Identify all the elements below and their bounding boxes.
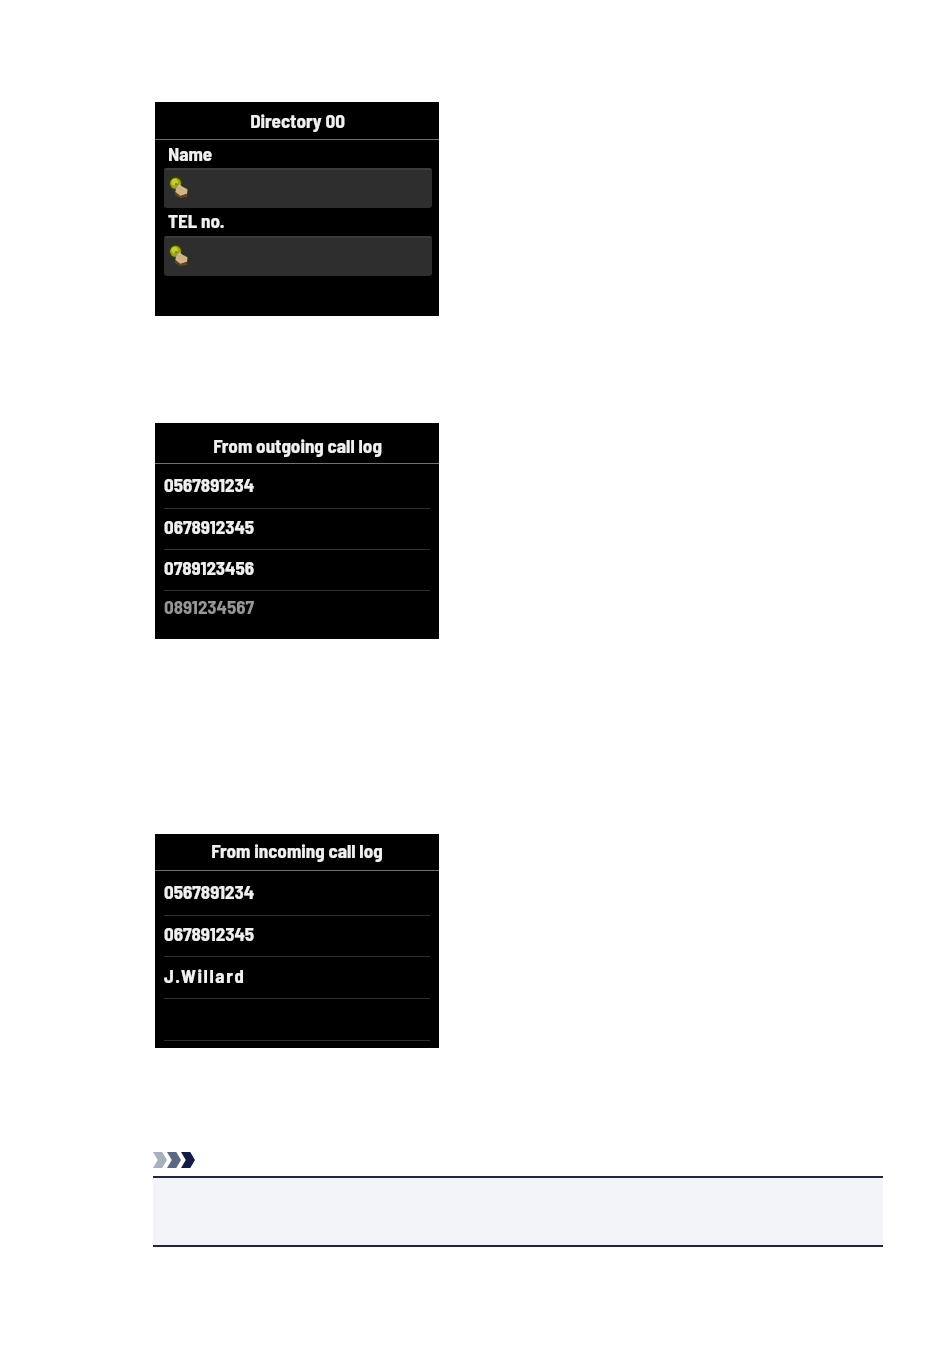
staticText: From incoming call log	[211, 839, 383, 862]
staticText: J.Willard	[164, 964, 246, 987]
staticText: 0678912345	[164, 515, 255, 538]
button[interactable]: 0789123456	[155, 549, 439, 590]
staticText: 0789123456	[164, 556, 255, 579]
staticText: From outgoing call log	[213, 434, 382, 457]
staticText: Name	[168, 142, 213, 165]
staticText: 0891234567	[164, 595, 255, 618]
staticText: 0567891234	[164, 880, 255, 903]
button[interactable]: Enter name	[164, 168, 432, 208]
button[interactable]: Enter telephone number	[164, 236, 432, 276]
other: Note	[153, 1152, 195, 1168]
staticText: Directory 00	[250, 109, 345, 132]
staticText: 0678912345	[164, 922, 255, 945]
button[interactable]: 0567891234	[155, 464, 439, 508]
staticText: 0567891234	[164, 473, 255, 496]
button[interactable]	[155, 998, 439, 1040]
button[interactable]: 0891234567	[155, 590, 439, 627]
button[interactable]: 0678912345	[155, 915, 439, 956]
button[interactable]: J.Willard	[155, 956, 439, 998]
button[interactable]: 0567891234	[155, 871, 439, 915]
button[interactable]: 0678912345	[155, 508, 439, 549]
staticText: TEL no.	[168, 209, 225, 232]
